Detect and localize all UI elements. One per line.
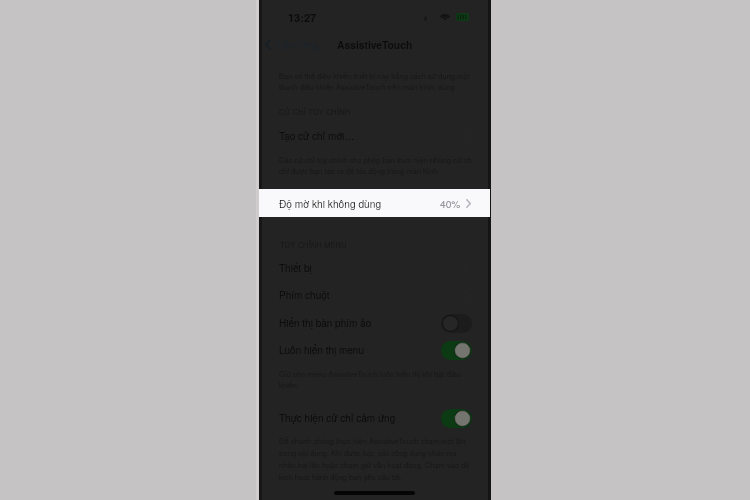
- staticText: Thiết bị: [279, 261, 312, 275]
- staticText: TÙY CHỈNH MENU: [280, 240, 347, 251]
- staticText: Độ mờ khi không dùng: [279, 196, 382, 211]
- button[interactable]: Thực hiện cử chỉ cảm ứng: [259, 405, 490, 431]
- staticText: 13:27: [288, 10, 317, 26]
- button[interactable]: Luôn hiển thị menu: [259, 338, 490, 363]
- staticText: AssistiveTouch: [337, 37, 413, 52]
- button[interactable]: Toggle on: [441, 341, 472, 360]
- button[interactable]: Độ mờ khi không dùng: [259, 189, 490, 217]
- button[interactable]: Hiển thị bàn phím ảo: [259, 311, 490, 336]
- button[interactable]: Toggle on: [441, 409, 472, 428]
- staticText: Thực hiện cử chỉ cảm ứng: [279, 411, 396, 425]
- button[interactable]: Tạo cử chỉ mới…: [259, 124, 490, 148]
- staticText: 40%: [440, 196, 461, 211]
- button[interactable]: Phím chuột: [259, 283, 490, 308]
- staticText: Tạo cử chỉ mới…: [279, 129, 355, 143]
- staticText: Luôn hiển thị menu: [279, 343, 364, 357]
- staticText: Phím chuột: [279, 288, 330, 302]
- button[interactable]: Toggle off: [441, 314, 472, 333]
- staticText: Hiển thị bàn phím ảo: [279, 316, 372, 330]
